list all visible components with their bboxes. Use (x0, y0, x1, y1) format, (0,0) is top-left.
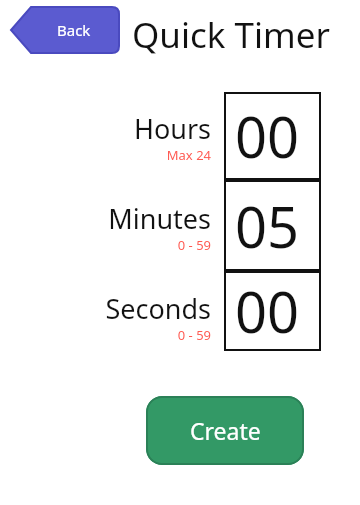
staticText: Create (190, 415, 261, 446)
button[interactable]: Create (146, 396, 304, 465)
button[interactable]: Hours value (224, 92, 321, 180)
staticText: 0 - 59 (177, 326, 211, 344)
staticText: Back (57, 20, 91, 40)
button[interactable]: Minutes value (224, 180, 321, 271)
staticText: Seconds (105, 290, 211, 327)
staticText: 00 (235, 98, 300, 174)
button[interactable]: Seconds value (224, 271, 321, 351)
staticText: 0 - 59 (177, 236, 211, 254)
staticText: Minutes (108, 200, 211, 237)
button[interactable]: Back (11, 7, 119, 53)
staticText: Max 24 (166, 146, 211, 164)
staticText: Hours (133, 110, 211, 147)
staticText: 05 (235, 188, 300, 264)
staticText: Quick Timer (132, 11, 330, 59)
staticText: 00 (235, 273, 300, 349)
